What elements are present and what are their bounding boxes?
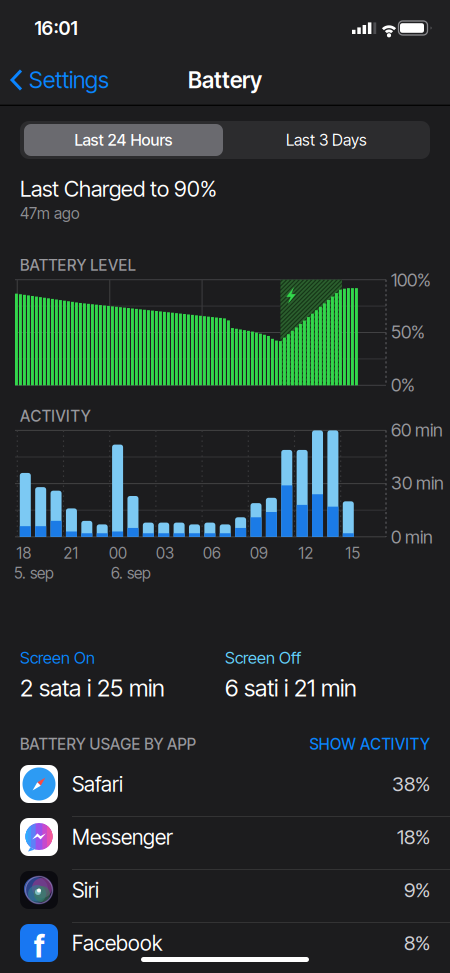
staticText: f bbox=[34, 928, 45, 965]
staticText: 47m ago bbox=[20, 204, 80, 223]
staticText: ACTIVITY bbox=[20, 407, 91, 425]
staticText: Safari bbox=[72, 771, 123, 797]
staticText: 6 sati i 21 min bbox=[225, 674, 357, 702]
staticText: SHOW ACTIVITY bbox=[309, 735, 430, 753]
staticText: 60 min bbox=[391, 419, 443, 441]
staticText: Facebook bbox=[72, 930, 162, 956]
staticText: 06 bbox=[203, 544, 221, 562]
staticText: 100% bbox=[391, 269, 431, 291]
button[interactable]: Last 24 Hours bbox=[24, 124, 223, 156]
staticText: 2 sata i 25 min bbox=[20, 674, 165, 702]
staticText: 6. sep bbox=[111, 564, 151, 582]
staticText: Settings bbox=[29, 66, 109, 94]
staticText: 5. sep bbox=[14, 564, 54, 582]
staticText: Battery bbox=[188, 66, 262, 94]
staticText: 09 bbox=[250, 544, 268, 562]
staticText: Screen Off bbox=[225, 648, 301, 668]
staticText: 8% bbox=[404, 931, 430, 955]
staticText: Last 24 Hours bbox=[74, 130, 172, 150]
staticText: 9% bbox=[404, 878, 430, 902]
staticText: 0 min bbox=[391, 526, 433, 548]
button[interactable]: Messenger bbox=[20, 810, 430, 863]
staticText: BATTERY LEVEL bbox=[20, 256, 136, 274]
staticText: Messenger bbox=[72, 824, 173, 850]
button[interactable]: Settings bbox=[10, 66, 130, 94]
staticText: 18% bbox=[397, 825, 430, 849]
button[interactable]: Safari bbox=[20, 757, 430, 810]
button[interactable]: Siri bbox=[20, 863, 430, 916]
staticText: 12 bbox=[298, 544, 313, 562]
staticText: Last Charged to 90% bbox=[20, 175, 217, 202]
staticText: 16:01 bbox=[34, 16, 77, 39]
button[interactable]: Last 3 Days bbox=[227, 124, 426, 156]
staticText: Screen On bbox=[20, 648, 95, 668]
staticText: 21 bbox=[63, 544, 78, 562]
staticText: 50% bbox=[391, 321, 425, 343]
staticText: 00 bbox=[109, 544, 127, 562]
staticText: 18 bbox=[16, 544, 31, 562]
staticText: 03 bbox=[156, 544, 174, 562]
staticText: Last 3 Days bbox=[286, 130, 367, 150]
button[interactable]: SHOW ACTIVITY bbox=[270, 735, 430, 753]
staticText: 38% bbox=[392, 772, 430, 796]
staticText: 0% bbox=[391, 374, 415, 396]
staticText: Siri bbox=[72, 877, 99, 903]
staticText: 15 bbox=[345, 544, 360, 562]
staticText: BATTERY USAGE BY APP bbox=[20, 735, 196, 753]
button[interactable]: f bbox=[20, 916, 430, 969]
staticText: 30 min bbox=[391, 472, 444, 494]
